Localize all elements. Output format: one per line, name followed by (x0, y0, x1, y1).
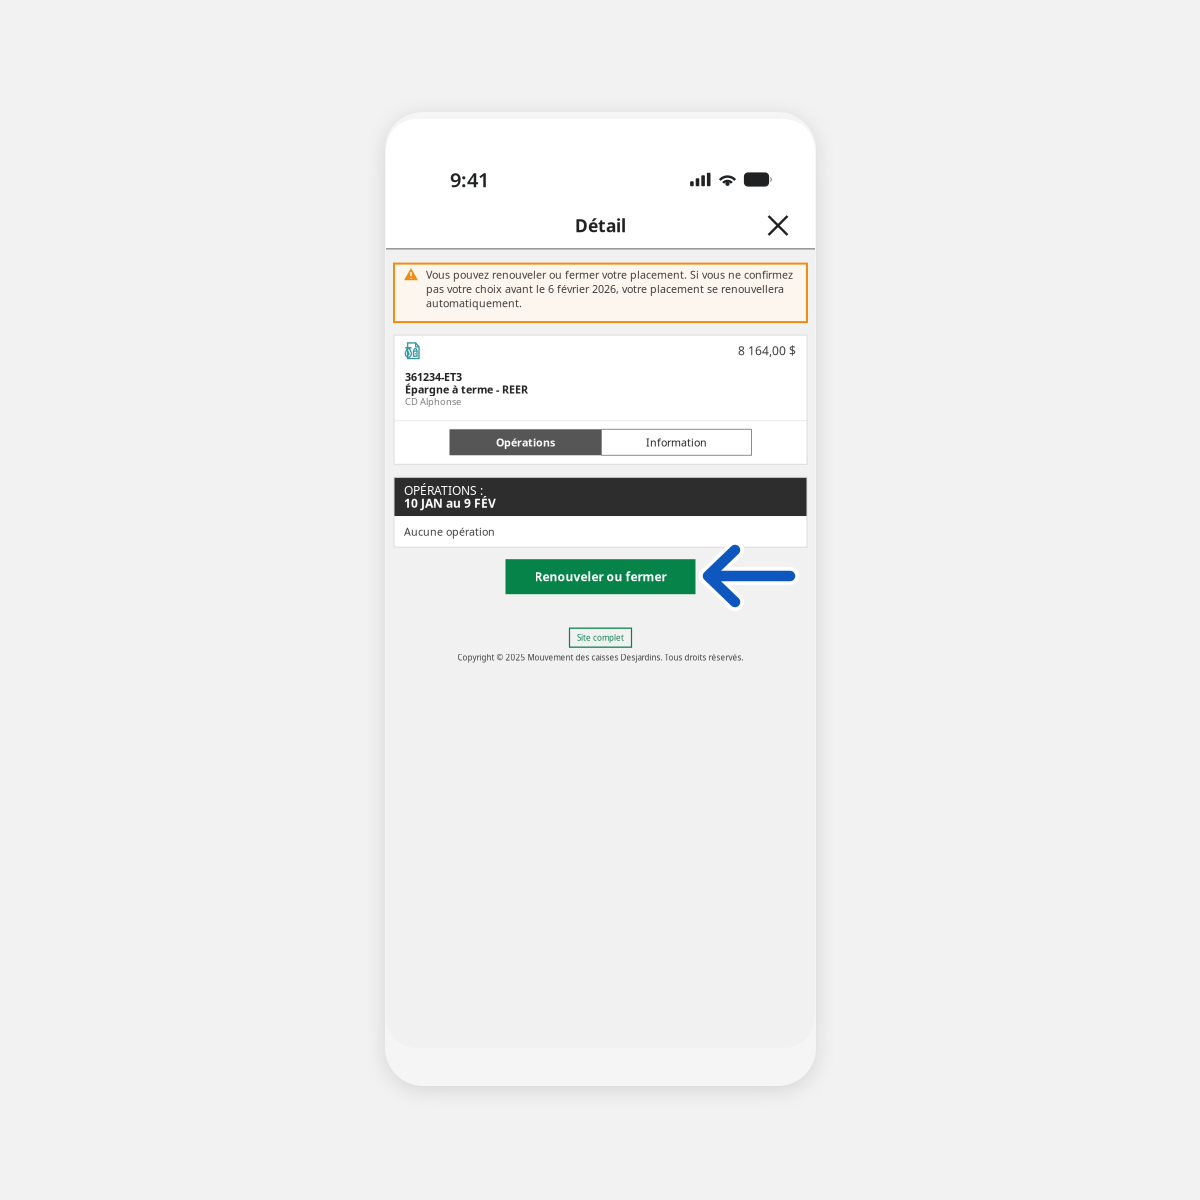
staticText: OPÉRATIONS : (404, 482, 483, 498)
staticText: Information (646, 435, 707, 449)
staticText: Copyright © 2025 Mouvement des caisses D… (457, 652, 743, 663)
button[interactable]: Fermer (759, 206, 797, 244)
staticText: Vous pouvez renouveler ou fermer votre p… (426, 268, 793, 310)
staticText: 10 JAN au 9 FÉV (404, 495, 496, 511)
staticText: Opérations (496, 435, 555, 449)
staticText: Site complet (577, 632, 624, 643)
staticText: 361234-ET3 (405, 370, 462, 384)
staticText: 8 164,00 $ (738, 343, 796, 359)
staticText: Épargne à terme - REER (405, 382, 528, 396)
staticText: CD Alphonse (405, 395, 461, 407)
staticText: 9:41 (450, 166, 489, 193)
button[interactable]: Information (601, 429, 751, 455)
button[interactable]: Renouveler ou fermer (505, 559, 695, 594)
button[interactable]: Site complet (569, 628, 631, 647)
button[interactable]: Opérations (449, 429, 601, 455)
staticText: Renouveler ou fermer (534, 569, 666, 585)
staticText: Détail (575, 214, 626, 237)
staticText: Aucune opération (404, 525, 495, 539)
